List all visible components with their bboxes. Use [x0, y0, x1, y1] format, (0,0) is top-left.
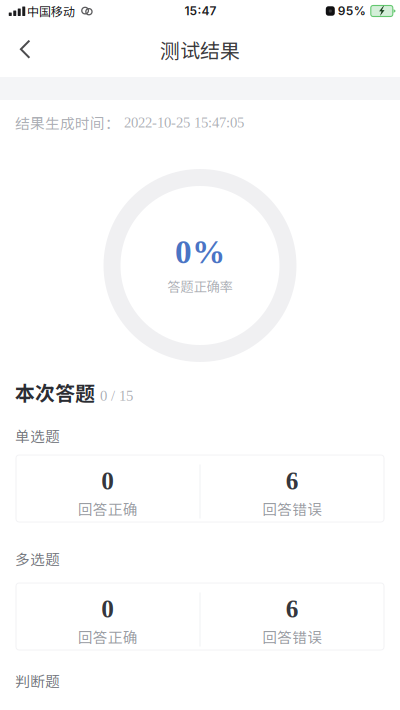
staticText: 6 [286, 467, 299, 495]
button[interactable]: Back [0, 23, 47, 76]
staticText: 中国移动 [27, 2, 75, 20]
staticText: 0 [101, 467, 114, 495]
staticText: 回答错误 [262, 626, 322, 647]
staticText: 回答正确 [78, 498, 138, 519]
staticText: 回答正确 [78, 626, 138, 647]
staticText: 结果生成时间： [15, 112, 120, 133]
staticText: 测试结果 [160, 35, 240, 64]
staticText: 2022-10-25 15:47:05 [120, 114, 244, 131]
staticText: 多选题 [15, 548, 60, 569]
staticText: 6 [286, 595, 299, 623]
staticText: 回答错误 [262, 498, 322, 519]
staticText: 答题正确率 [167, 276, 232, 296]
staticText: 0 [101, 595, 114, 623]
staticText: 15:47 [184, 4, 216, 18]
staticText: 95% [338, 4, 366, 18]
staticText: 判断题 [15, 670, 60, 691]
staticText: 0% [175, 233, 225, 270]
staticText: 0 / 15 [100, 388, 133, 404]
staticText: 本次答题 [15, 377, 95, 406]
staticText: 单选题 [15, 425, 60, 446]
